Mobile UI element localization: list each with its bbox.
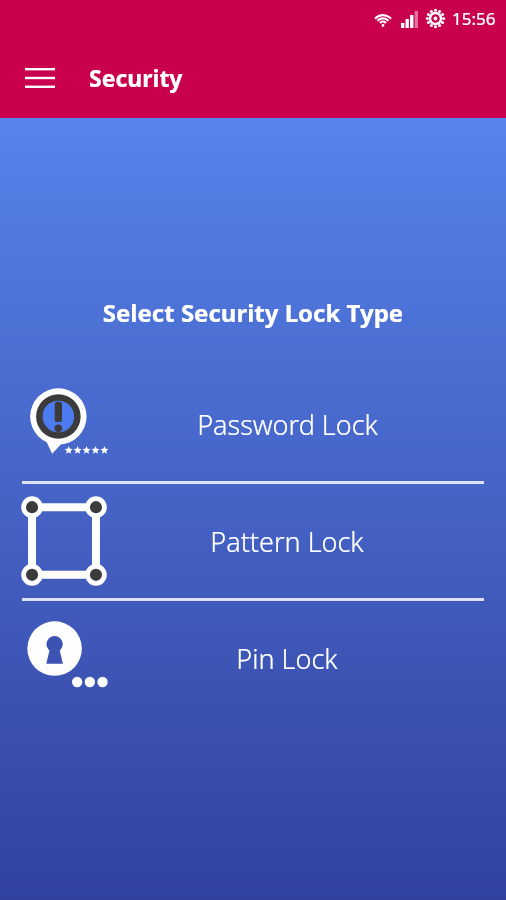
staticText: Pattern Lock <box>210 523 364 560</box>
staticText: Security <box>89 62 183 93</box>
staticText: Password Lock <box>197 406 378 443</box>
button[interactable]: Password Lock <box>0 367 506 481</box>
button[interactable]: Pin Lock <box>0 601 506 715</box>
staticText: Pin Lock <box>236 640 338 677</box>
button[interactable]: Pattern Lock <box>0 484 506 598</box>
staticText: Select Security Lock Type <box>0 296 506 329</box>
button[interactable]: Open navigation menu <box>14 52 66 104</box>
staticText: 15:56 <box>452 7 496 30</box>
